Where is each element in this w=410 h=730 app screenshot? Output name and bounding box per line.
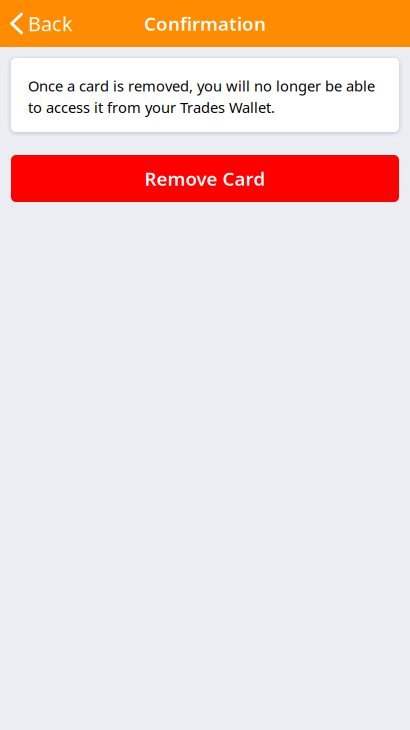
button[interactable]: Remove Card: [11, 155, 399, 202]
staticText: Once a card is removed, you will no long…: [28, 76, 375, 117]
button[interactable]: Back: [0, 0, 83, 47]
staticText: Back: [28, 10, 73, 37]
staticText: Remove Card: [144, 166, 265, 191]
staticText: Confirmation: [144, 11, 266, 36]
